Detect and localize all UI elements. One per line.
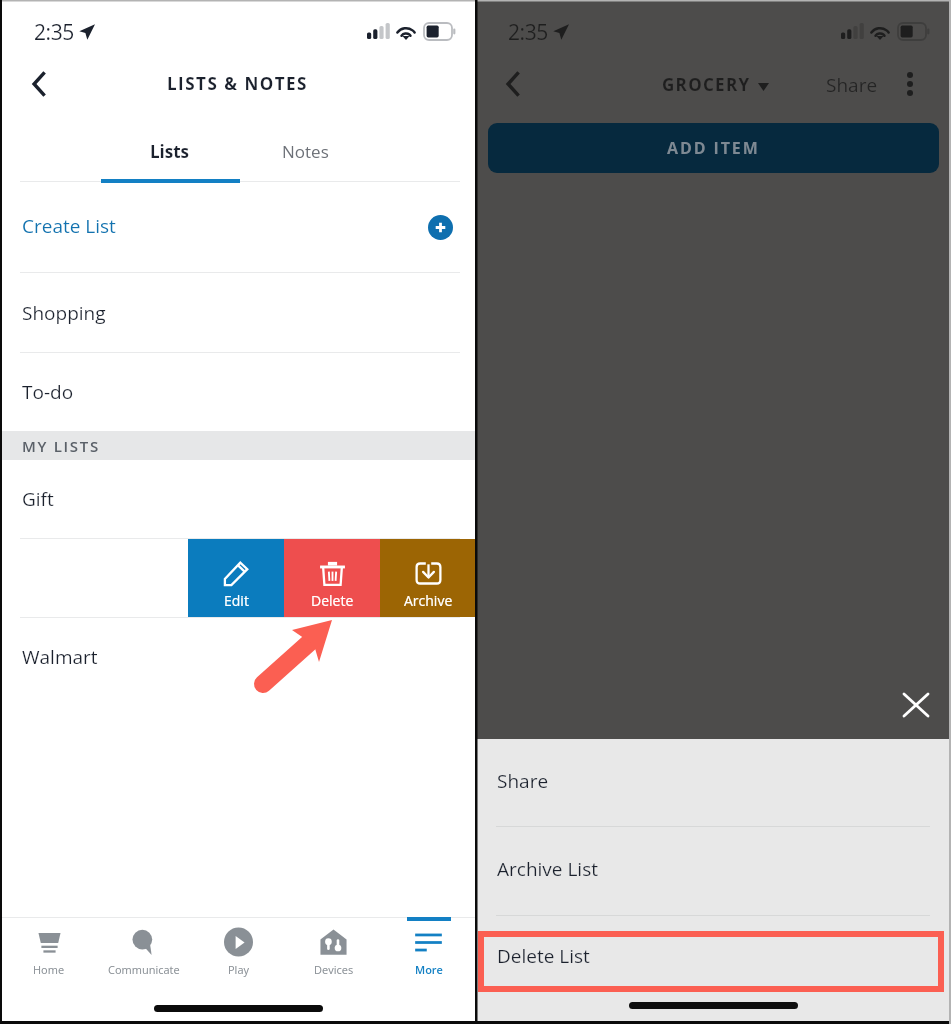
staticText: Share [497,768,549,794]
button[interactable]: Delete List [476,916,950,999]
staticText: Delete List [497,943,590,969]
staticText: Communicate [108,962,180,977]
button[interactable]: Gift [2,460,476,538]
button[interactable]: To-do [2,353,476,431]
staticText: Lists [150,140,190,163]
button[interactable]: Close [892,681,940,729]
staticText: 2:35 [34,18,74,47]
button[interactable]: Shopping [2,273,476,352]
button[interactable]: Walmart [2,618,476,696]
staticText: Devices [314,962,354,977]
button[interactable]: ADD ITEM [488,123,939,173]
button[interactable]: Communicate [96,918,191,988]
button[interactable]: Back [16,61,62,107]
button[interactable]: Edit [188,539,284,617]
staticText: Archive [404,591,453,610]
staticText: Home [33,962,65,977]
button[interactable]: Lists [100,133,240,169]
button[interactable]: Delete [284,539,380,617]
button[interactable]: More options [888,62,932,106]
staticText: MY LISTS [22,436,100,456]
staticText: Edit [224,591,249,610]
button[interactable]: More [381,918,476,988]
staticText: Gift [22,486,54,512]
button[interactable]: Archive [380,539,476,617]
staticText: ADD ITEM [667,137,760,159]
staticText: Delete [311,591,354,610]
staticText: To-do [22,379,74,405]
staticText: Walmart [22,644,98,670]
staticText: Shopping [22,300,106,326]
button[interactable]: Play [191,918,286,988]
staticText: Notes [282,140,329,163]
staticText: GROCERY [662,73,751,96]
staticText: More [415,962,443,977]
button[interactable]: Back [490,61,536,107]
staticText: Share [826,72,878,98]
button[interactable]: Devices [286,918,381,988]
staticText: Play [228,962,250,977]
button[interactable]: Create List [2,192,476,272]
staticText: Archive List [497,856,598,882]
button[interactable]: Share [476,739,950,826]
button[interactable]: Share [826,67,878,103]
button[interactable]: Home [2,918,96,988]
button[interactable]: Notes [235,133,375,169]
button[interactable]: GROCERY [662,73,769,96]
staticText: LISTS & NOTES [167,72,308,95]
staticText: 2:35 [508,18,548,47]
button[interactable]: Archive List [476,827,950,915]
staticText: Create List [22,213,116,239]
